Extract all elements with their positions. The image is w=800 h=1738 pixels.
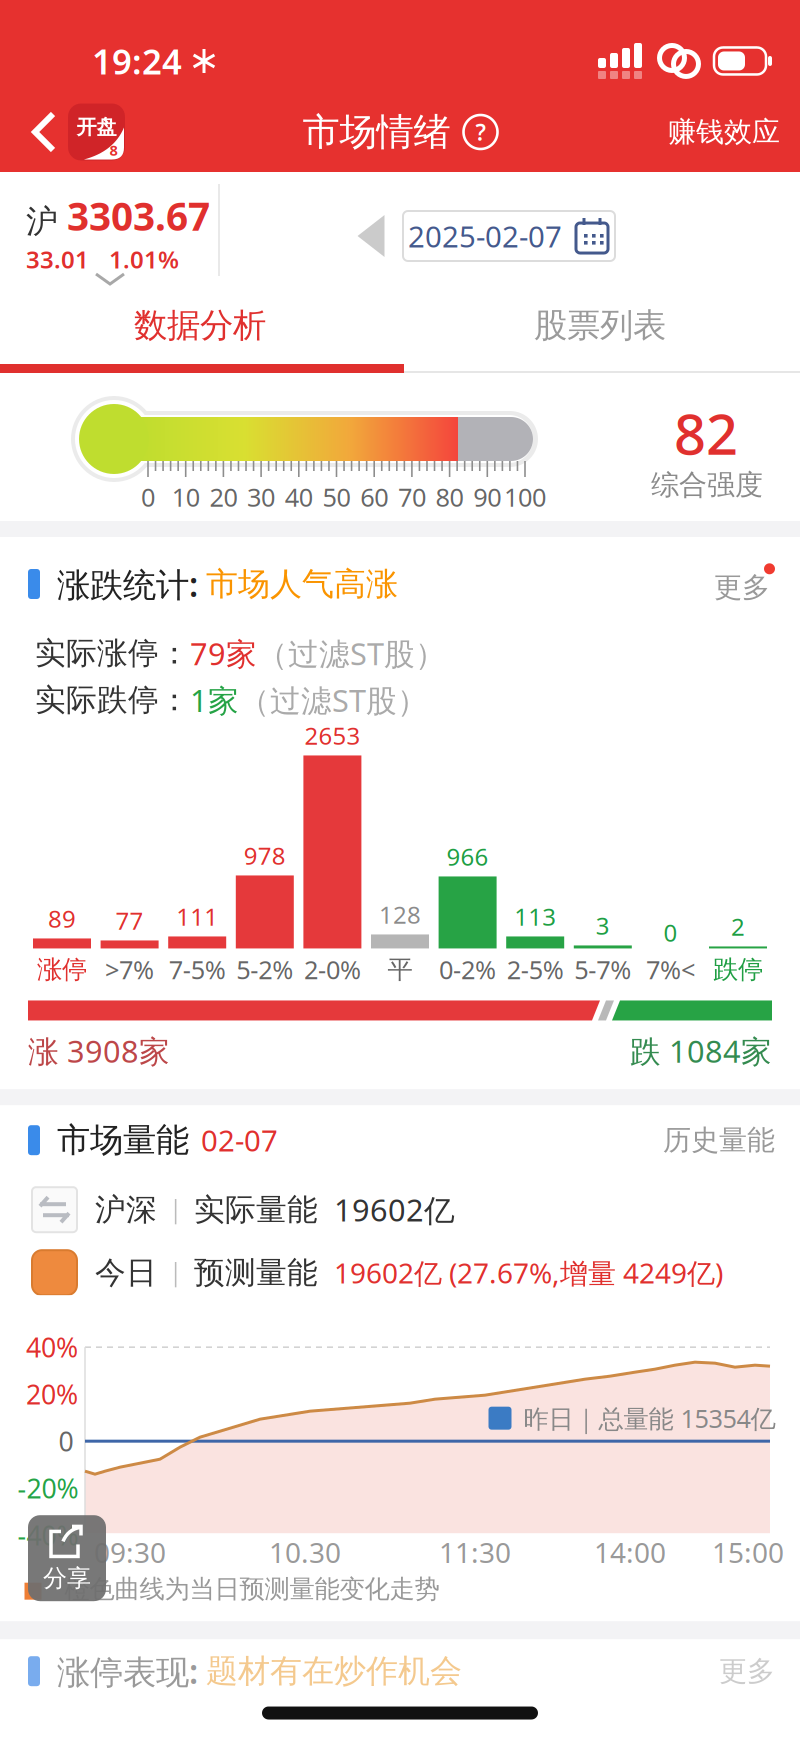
staticText: 市场情绪 <box>302 109 450 155</box>
staticText: 90 <box>473 480 501 514</box>
staticText: 沪深 <box>95 1191 157 1228</box>
staticText: 2025-02-07 <box>408 216 562 255</box>
staticText: 5-7% <box>574 953 631 986</box>
staticText: 预测量能 <box>194 1254 318 1291</box>
staticText: 综合强度 <box>651 468 763 502</box>
staticText: 1.01% <box>109 243 179 275</box>
staticText: 8 <box>109 140 117 160</box>
staticText: 19:24 <box>92 38 182 84</box>
staticText: 60 <box>360 480 388 514</box>
staticText: 2-0% <box>304 953 361 986</box>
staticText: 11:30 <box>439 1534 511 1571</box>
staticText: 09:30 <box>94 1534 166 1571</box>
staticText: ｜ <box>163 1257 188 1288</box>
staticText: 77 <box>116 905 144 936</box>
button[interactable]: 更多 <box>714 563 775 605</box>
staticText: 1家 <box>190 680 239 720</box>
staticText: （过滤ST股） <box>239 680 428 720</box>
staticText: 更多 <box>719 1654 775 1688</box>
button[interactable]: 2025-02-07 <box>403 211 615 261</box>
button[interactable]: 涨停表现: <box>0 1639 800 1703</box>
staticText: >7% <box>105 953 154 986</box>
staticText: 2-5% <box>507 953 564 986</box>
staticText: 50 <box>322 480 350 514</box>
staticText: 跌停 <box>713 954 763 985</box>
button[interactable]: 股票列表 <box>400 288 800 363</box>
staticText: 0 <box>58 1423 73 1459</box>
staticText: 40% <box>26 1329 78 1365</box>
staticText: 实际涨停： <box>35 634 190 672</box>
staticText: 113 <box>514 901 556 932</box>
staticText: 分享 <box>43 1563 91 1593</box>
staticText: 100 <box>504 480 546 514</box>
staticText: 79家 <box>190 633 257 674</box>
staticText: 0 <box>141 480 155 514</box>
staticText: 昨日｜总量能 15354亿 <box>523 1401 775 1435</box>
staticText: 10.30 <box>269 1534 341 1571</box>
staticText: 2 <box>731 911 745 942</box>
staticText: 3 <box>596 910 610 941</box>
staticText: 19602亿 <box>334 1189 455 1230</box>
button[interactable]: Share <box>28 1515 106 1601</box>
staticText: 更多 <box>714 570 770 605</box>
staticText: 14:00 <box>594 1534 666 1571</box>
staticText: 跌 1084家 <box>630 1030 772 1071</box>
staticText: 今日 <box>95 1254 157 1291</box>
staticText: 15:00 <box>712 1534 784 1571</box>
staticText: 赚钱效应 <box>668 115 780 149</box>
staticText: 5-2% <box>236 953 293 986</box>
staticText: 40 <box>285 480 313 514</box>
staticText: ｜ <box>163 1194 188 1225</box>
staticText: 橙色曲线为当日预测量能变化走势 <box>64 1574 439 1605</box>
staticText: ? <box>475 117 485 147</box>
staticText: 7-5% <box>169 953 226 986</box>
button[interactable]: 赚钱效应 <box>668 115 800 149</box>
staticText: 沪 <box>26 202 58 241</box>
staticText: 涨停表现: <box>57 1649 198 1693</box>
staticText: 实际量能 <box>194 1191 318 1228</box>
button[interactable]: 历史量能 <box>663 1123 775 1157</box>
staticText: 20 <box>209 480 237 514</box>
staticText: 70 <box>398 480 426 514</box>
staticText: 7%< <box>646 953 695 986</box>
staticText: 涨跌统计: <box>57 562 198 606</box>
staticText: 题材有在炒作机会 <box>206 1651 462 1691</box>
staticText: 82 <box>674 396 738 470</box>
button[interactable]: 沪 <box>0 172 800 288</box>
staticText: 19602亿 (27.67%,增量 4249亿) <box>334 1254 723 1291</box>
staticText: 0-2% <box>439 953 496 986</box>
staticText: 111 <box>176 901 218 932</box>
staticText: 2653 <box>304 720 360 751</box>
staticText: 3303.67 <box>67 190 210 241</box>
staticText: 89 <box>48 903 76 934</box>
staticText: 涨停 <box>37 954 87 985</box>
button[interactable]: 数据分析 <box>0 288 400 363</box>
button[interactable]: Back <box>0 103 125 160</box>
staticText: 978 <box>244 840 286 871</box>
staticText: 涨 3908家 <box>28 1030 170 1071</box>
button[interactable]: Previous day <box>357 215 384 257</box>
staticText: 市场量能 <box>57 1120 189 1161</box>
staticText: 80 <box>436 480 464 514</box>
staticText: 33.01 <box>26 243 89 275</box>
staticText: 数据分析 <box>134 305 266 346</box>
button[interactable]: Help <box>463 115 497 149</box>
staticText: -40% <box>17 1517 78 1553</box>
staticText: 市场人气高涨 <box>206 564 398 604</box>
staticText: -20% <box>17 1470 78 1506</box>
staticText: 02-07 <box>201 1121 278 1160</box>
staticText: 开盘 <box>76 115 116 139</box>
staticText: 实际跌停： <box>35 681 190 719</box>
staticText: 0 <box>663 917 677 948</box>
staticText: （过滤ST股） <box>257 633 446 674</box>
staticText: 966 <box>447 841 489 872</box>
staticText: 历史量能 <box>663 1123 775 1157</box>
staticText: 股票列表 <box>534 305 666 346</box>
staticText: 30 <box>247 480 275 514</box>
staticText: 128 <box>379 899 421 930</box>
staticText: 20% <box>26 1376 78 1412</box>
staticText: 平 <box>387 954 412 985</box>
staticText: 10 <box>172 480 200 514</box>
